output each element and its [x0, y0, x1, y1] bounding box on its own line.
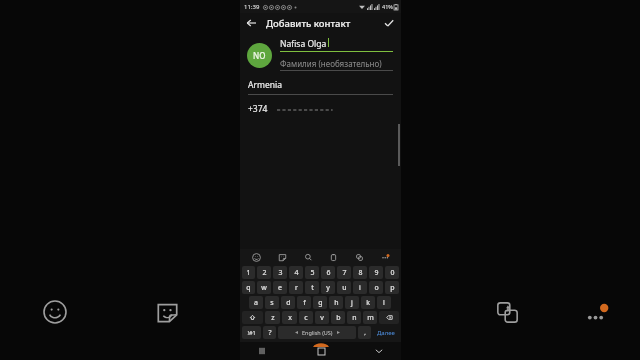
button[interactable]: v: [315, 311, 329, 324]
button[interactable]: r: [289, 281, 303, 294]
button[interactable]: 4: [289, 266, 303, 279]
button[interactable]: Clipboard: [327, 251, 339, 263]
staticText: u: [342, 283, 347, 293]
button[interactable]: z: [265, 311, 280, 324]
staticText: z: [271, 313, 275, 323]
button[interactable]: ,: [358, 326, 371, 339]
button[interactable]: u: [337, 281, 351, 294]
staticText: v: [320, 313, 324, 323]
button[interactable]: 3: [273, 266, 287, 279]
staticText: 6: [326, 268, 331, 278]
staticText: e: [278, 283, 282, 293]
button[interactable]: 6: [321, 266, 335, 279]
staticText: a: [254, 298, 258, 308]
button[interactable]: ?: [263, 326, 276, 339]
button[interactable]: x: [282, 311, 297, 324]
staticText: 5: [310, 268, 315, 278]
staticText: 11:39: [244, 3, 260, 11]
staticText: k: [366, 298, 370, 308]
staticText: 0: [390, 268, 395, 278]
staticText: p: [390, 283, 395, 293]
staticText: Armenia: [248, 79, 282, 91]
button[interactable]: h: [329, 296, 343, 309]
button[interactable]: +374: [248, 103, 393, 115]
staticText: 2: [262, 268, 267, 278]
button[interactable]: p: [385, 281, 399, 294]
button[interactable]: m: [363, 311, 377, 324]
button[interactable]: q: [242, 281, 255, 294]
button[interactable]: e: [273, 281, 287, 294]
staticText: Nafisa Olga: [280, 38, 327, 50]
button[interactable]: Emoji: [250, 251, 262, 263]
staticText: h: [334, 298, 339, 308]
button[interactable]: b: [331, 311, 345, 324]
button[interactable]: w: [257, 281, 271, 294]
button[interactable]: Search: [302, 251, 314, 263]
button[interactable]: Change photo: [247, 43, 272, 68]
button[interactable]: 9: [369, 266, 383, 279]
button[interactable]: o: [369, 281, 383, 294]
staticText: l: [383, 298, 385, 308]
button[interactable]: Text editing: [353, 251, 365, 263]
staticText: r: [295, 283, 298, 293]
button[interactable]: y: [321, 281, 335, 294]
button[interactable]: i: [353, 281, 367, 294]
staticText: g: [318, 298, 323, 308]
staticText: d: [286, 298, 291, 308]
button[interactable]: Hide keyboard: [371, 346, 387, 356]
staticText: 41%: [382, 3, 393, 10]
button[interactable]: Stickers: [152, 297, 182, 327]
staticText: f: [303, 298, 306, 308]
button[interactable]: Back: [243, 15, 259, 31]
staticText: !#1: [247, 329, 256, 336]
staticText: 7: [342, 268, 347, 278]
staticText: c: [304, 313, 308, 323]
button[interactable]: 0: [385, 266, 399, 279]
button[interactable]: l: [377, 296, 391, 309]
button[interactable]: Translate: [492, 297, 522, 327]
button[interactable]: More: [379, 251, 391, 263]
button[interactable]: 1: [242, 266, 255, 279]
button[interactable]: 8: [353, 266, 367, 279]
staticText: +374: [248, 103, 268, 115]
button[interactable]: Nafisa Olga: [280, 37, 393, 51]
button[interactable]: English (US): [278, 326, 356, 339]
button[interactable]: Emoji: [40, 297, 70, 327]
button[interactable]: 7: [337, 266, 351, 279]
button[interactable]: More options: [580, 297, 614, 331]
button[interactable]: !#1: [242, 326, 261, 339]
button[interactable]: c: [299, 311, 313, 324]
staticText: s: [270, 298, 274, 308]
staticText: 8: [358, 268, 363, 278]
button[interactable]: Home: [313, 346, 329, 356]
staticText: 3: [278, 268, 283, 278]
button[interactable]: Backspace: [379, 311, 399, 324]
button[interactable]: n: [347, 311, 361, 324]
button[interactable]: Recent apps: [254, 346, 270, 356]
staticText: q: [246, 283, 251, 293]
button[interactable]: Фамилия (необязательно): [280, 57, 393, 70]
staticText: ,: [364, 329, 366, 337]
staticText: y: [326, 283, 330, 293]
button[interactable]: Shift: [242, 311, 263, 324]
button[interactable]: Stickers: [276, 251, 288, 263]
button[interactable]: a: [249, 296, 263, 309]
button[interactable]: s: [265, 296, 279, 309]
button[interactable]: g: [313, 296, 327, 309]
staticText: 1: [246, 268, 251, 278]
staticText: j: [351, 298, 353, 308]
button[interactable]: j: [345, 296, 359, 309]
staticText: Добавить контакт: [266, 17, 351, 30]
button[interactable]: 5: [305, 266, 319, 279]
button[interactable]: Далее: [373, 326, 399, 339]
button[interactable]: d: [281, 296, 295, 309]
button[interactable]: Save: [381, 15, 397, 31]
button[interactable]: k: [361, 296, 375, 309]
button[interactable]: 2: [257, 266, 271, 279]
button[interactable]: f: [297, 296, 311, 309]
button[interactable]: t: [305, 281, 319, 294]
staticText: 9: [374, 268, 379, 278]
button[interactable]: Armenia: [248, 79, 393, 95]
staticText: Фамилия (необязательно): [280, 58, 382, 69]
staticText: o: [374, 283, 379, 293]
